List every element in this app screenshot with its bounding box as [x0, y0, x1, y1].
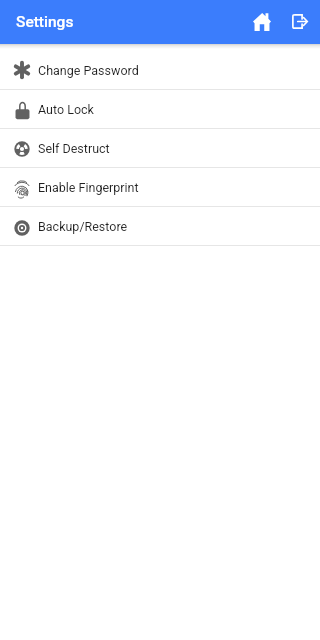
staticText: Change Password: [38, 63, 139, 78]
staticText: Settings: [16, 13, 74, 31]
button[interactable]: Change Password: [0, 51, 320, 89]
staticText: Enable Fingerprint: [38, 180, 139, 195]
button[interactable]: Auto Lock: [0, 90, 320, 128]
button[interactable]: Backup/Restore: [0, 207, 320, 245]
staticText: Self Destruct: [38, 141, 110, 156]
button[interactable]: Self Destruct: [0, 129, 320, 167]
button[interactable]: Home: [244, 0, 280, 44]
button[interactable]: Enable Fingerprint: [0, 168, 320, 206]
staticText: Backup/Restore: [38, 219, 128, 234]
staticText: Auto Lock: [38, 102, 94, 117]
button[interactable]: Log out: [282, 0, 318, 44]
